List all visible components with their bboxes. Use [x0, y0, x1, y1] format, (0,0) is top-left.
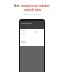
staticText: Get [14, 4, 21, 8]
staticText: Lorem ipsum dolor [23, 13, 41, 16]
staticText: search now [24, 8, 41, 12]
staticText: Search here [21, 22, 33, 25]
staticText: answers on instant [21, 4, 50, 8]
button[interactable] [21, 41, 26, 43]
